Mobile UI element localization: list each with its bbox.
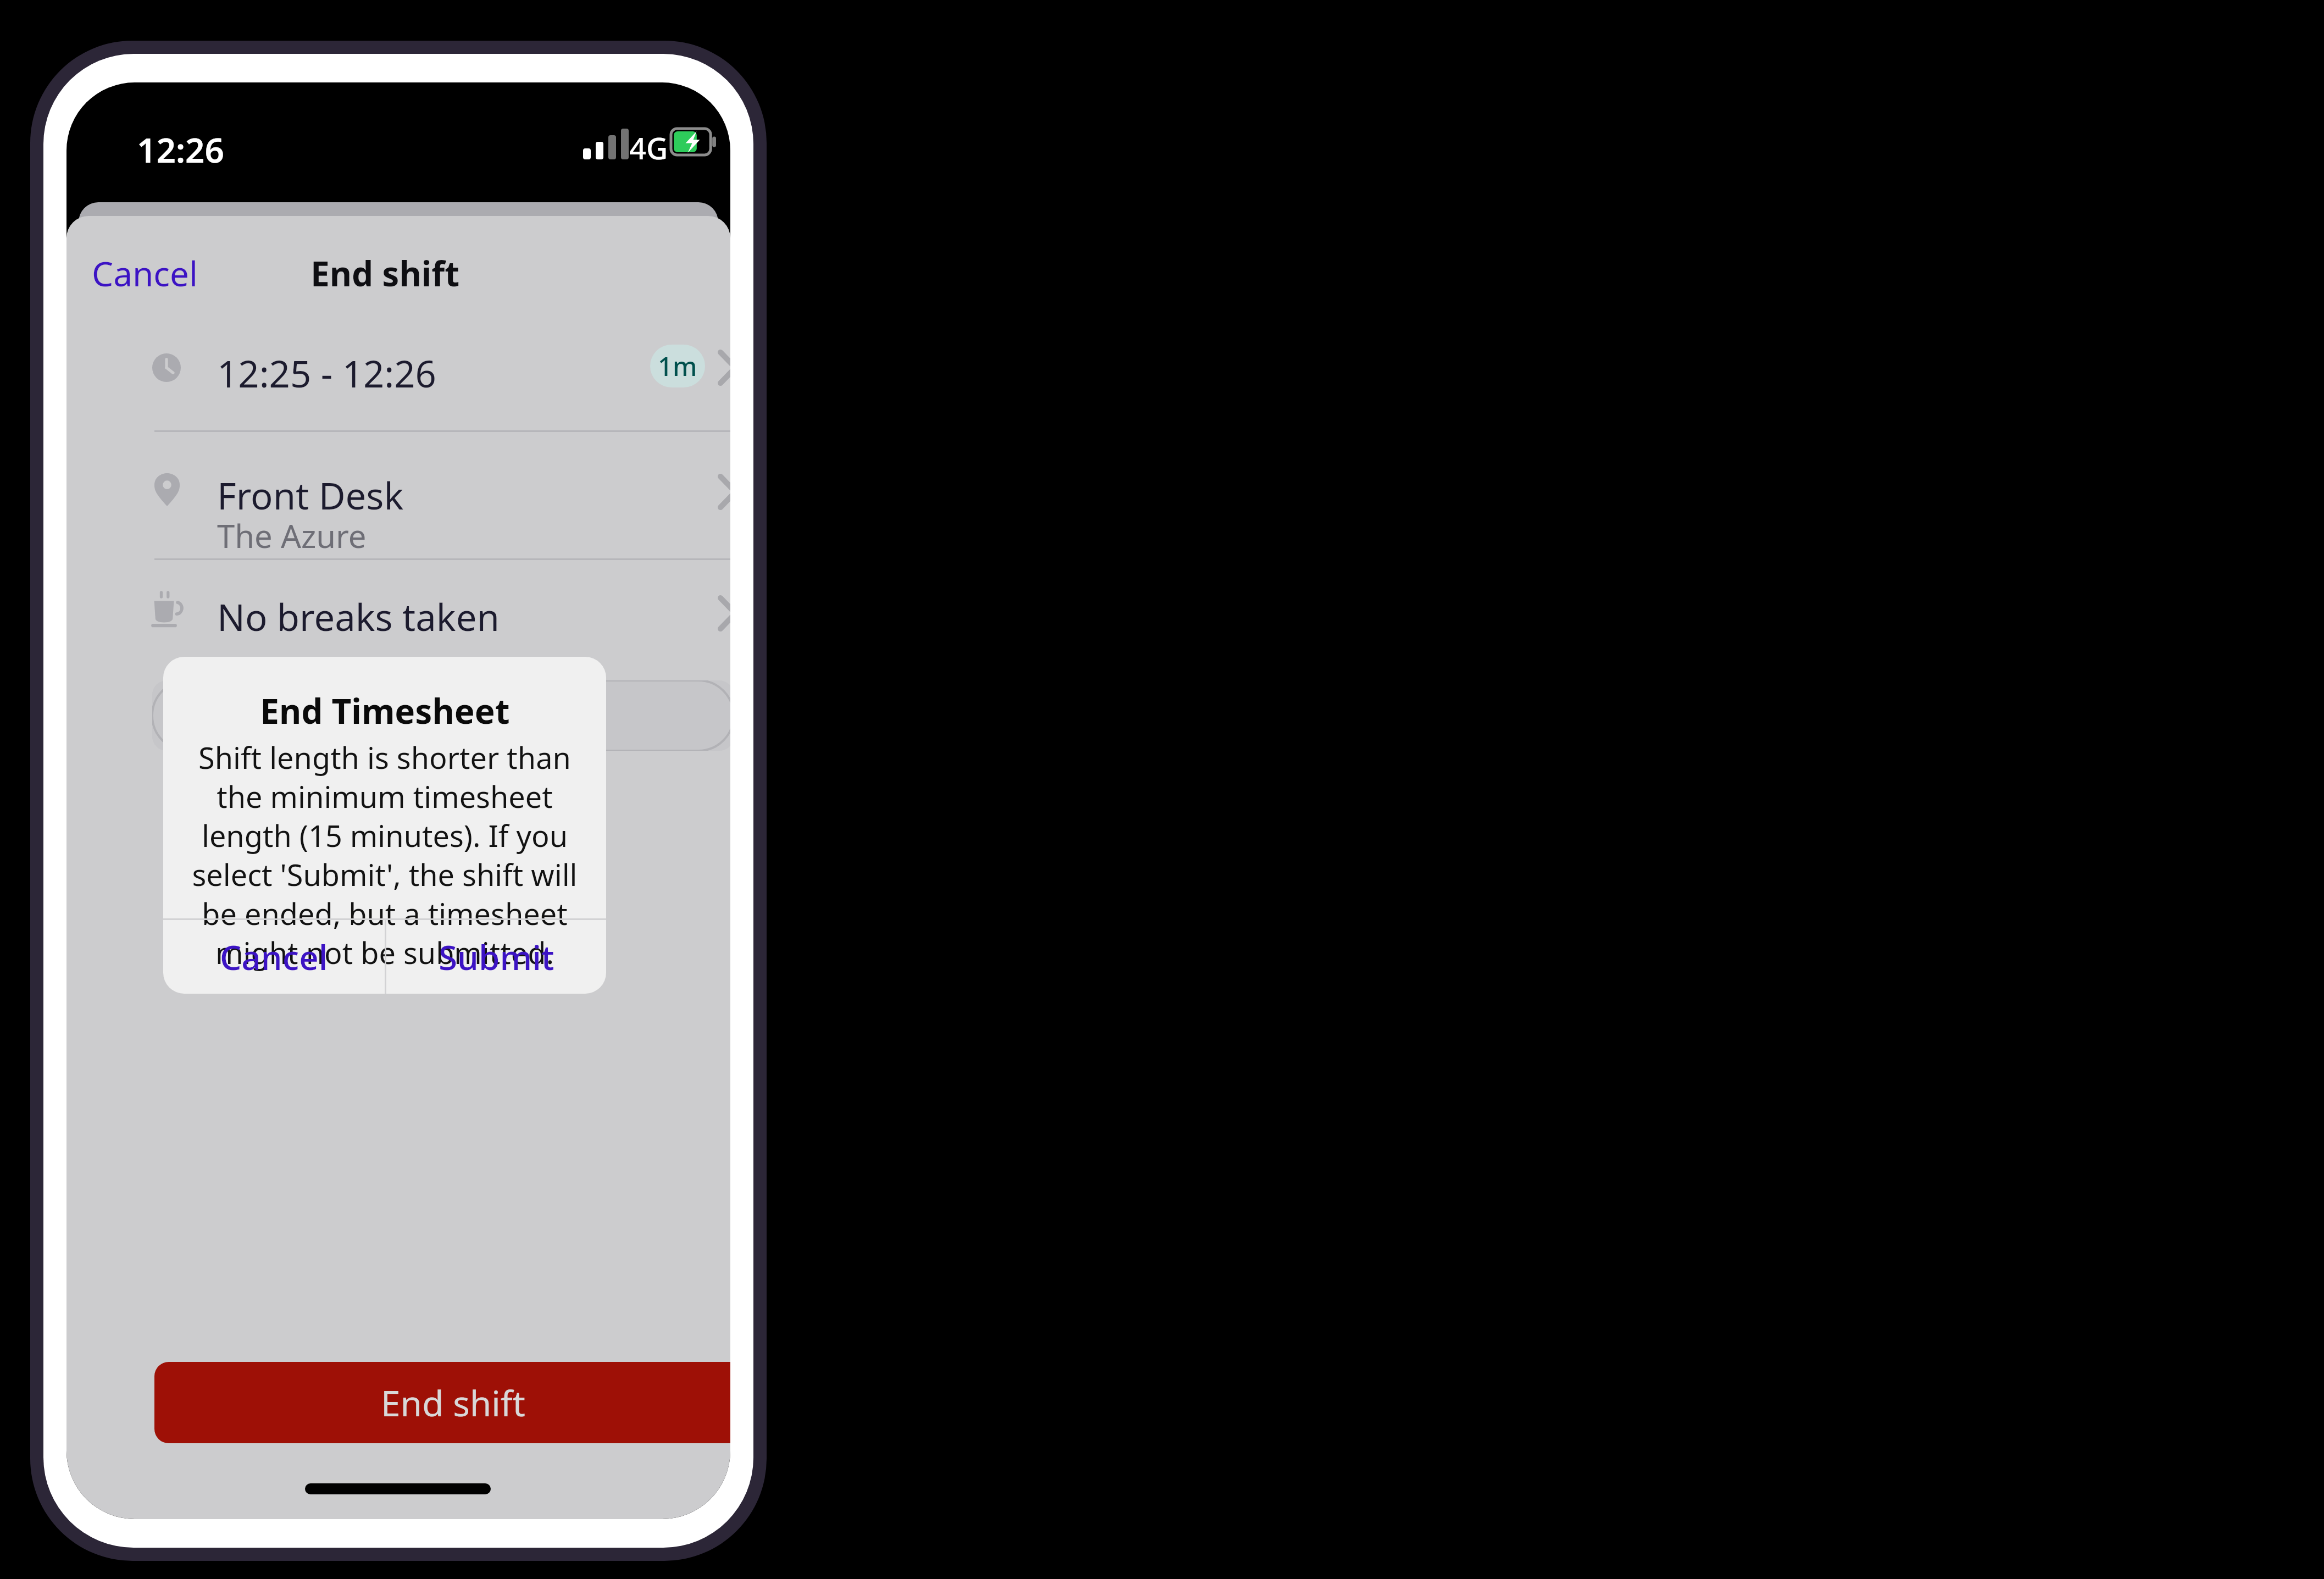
staticText: Cancel xyxy=(220,934,328,980)
button[interactable]: Submit xyxy=(386,920,606,994)
staticText: 4G xyxy=(629,128,668,168)
button[interactable]: End shift xyxy=(154,1362,730,1443)
staticText: 12:25 - 12:26 xyxy=(217,348,436,398)
button[interactable]: Cancel xyxy=(163,920,385,994)
button[interactable]: 12:25 - 12:26 xyxy=(66,311,730,422)
staticText: End shift xyxy=(310,250,460,296)
button[interactable]: Front Desk xyxy=(66,430,730,558)
staticText: End shift xyxy=(381,1379,525,1427)
staticText: The Azure xyxy=(217,514,367,557)
staticText: No breaks taken xyxy=(217,591,500,641)
staticText: Cancel xyxy=(92,250,198,296)
staticText: Leave a note xyxy=(173,699,369,744)
other: Open xyxy=(718,598,730,629)
button[interactable]: No breaks taken xyxy=(66,558,730,663)
button[interactable]: Leave a note xyxy=(152,680,730,751)
staticText: 12:26 xyxy=(137,126,224,173)
staticText: 1m xyxy=(658,348,697,384)
staticText: Front Desk xyxy=(217,470,404,520)
staticText: Submit xyxy=(439,934,554,980)
other: Open xyxy=(718,352,730,383)
staticText: Shift length is shorter than the minimum… xyxy=(192,737,578,973)
other: Open xyxy=(718,477,730,507)
staticText: End Timesheet xyxy=(260,688,510,734)
button[interactable]: Cancel xyxy=(83,245,207,302)
